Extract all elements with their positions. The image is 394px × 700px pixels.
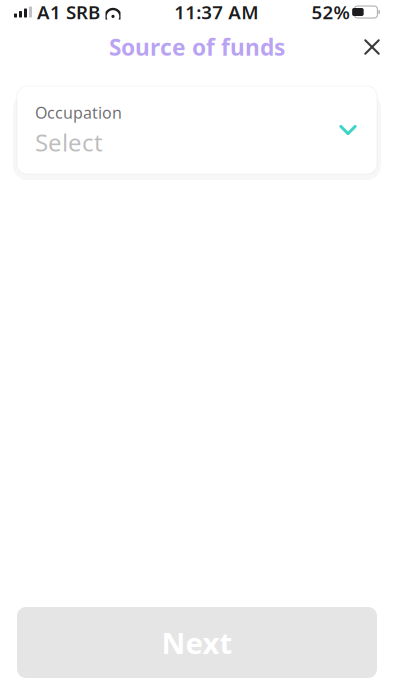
button[interactable]: Occupation xyxy=(17,86,377,174)
staticText: 11:37 AM xyxy=(174,0,258,24)
staticText: 52% xyxy=(311,0,349,24)
button[interactable]: Next xyxy=(17,607,377,678)
staticText: Occupation xyxy=(35,102,122,123)
staticText: Source of funds xyxy=(109,32,285,62)
staticText: Next xyxy=(161,623,232,662)
staticText: A1 SRB xyxy=(37,0,100,24)
button[interactable]: Close xyxy=(350,29,394,65)
staticText: Select xyxy=(35,126,103,158)
